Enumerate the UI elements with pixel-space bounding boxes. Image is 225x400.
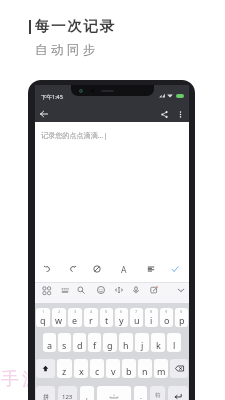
staticText: 自动同步	[33, 42, 97, 58]
staticText: 下午1:45	[41, 93, 63, 101]
button[interactable]: h	[119, 333, 133, 352]
button[interactable]: 0	[175, 308, 188, 327]
staticText: y	[119, 314, 124, 326]
button[interactable]: s	[58, 333, 71, 352]
button[interactable]: Collapse keyboard	[174, 283, 188, 297]
button[interactable]: 6	[115, 308, 128, 327]
staticText: 2	[58, 309, 61, 314]
button[interactable]: Symbols	[150, 386, 165, 400]
staticText: i	[150, 314, 153, 326]
button[interactable]: Emoji	[94, 283, 108, 297]
button[interactable]: b	[122, 359, 136, 378]
staticText: p	[179, 314, 185, 326]
staticText: 记录您的点点滴滴...|	[41, 130, 108, 140]
staticText: 9	[165, 309, 168, 314]
button[interactable]: Shift	[36, 359, 55, 378]
button[interactable]: n	[138, 359, 152, 378]
staticText: 0	[180, 309, 183, 314]
button[interactable]: l	[167, 333, 181, 352]
button[interactable]: Share	[157, 107, 171, 121]
button[interactable]: Done	[168, 262, 182, 276]
staticText: o	[164, 314, 170, 326]
staticText: k	[156, 339, 161, 351]
staticText: c	[95, 365, 100, 377]
button[interactable]: 123	[58, 386, 77, 400]
button[interactable]: j	[135, 333, 149, 352]
button[interactable]: Apps	[39, 283, 53, 297]
staticText: m	[157, 365, 166, 377]
staticText: q	[40, 314, 46, 326]
button[interactable]: a	[43, 333, 56, 352]
staticText: 拼	[43, 393, 49, 400]
staticText: 1	[42, 309, 45, 314]
button[interactable]: Backspace	[170, 359, 188, 378]
staticText: .	[140, 392, 142, 400]
staticText: 4	[90, 309, 93, 314]
button[interactable]: Enter	[168, 386, 188, 400]
staticText: d	[77, 339, 83, 351]
button[interactable]: Text style	[117, 262, 131, 276]
button[interactable]: k	[151, 333, 165, 352]
staticText: z	[62, 365, 67, 377]
staticText: 7	[135, 309, 138, 314]
staticText: v	[111, 365, 116, 377]
button[interactable]: 9	[160, 308, 173, 327]
button[interactable]: c	[90, 359, 104, 378]
button[interactable]: Keyboard layout	[58, 283, 72, 297]
button[interactable]: Voice input	[129, 283, 143, 297]
button[interactable]: Undo	[40, 262, 54, 276]
staticText: h	[123, 339, 129, 351]
button[interactable]: Clipboard	[147, 283, 161, 297]
staticText: 每一次记录	[34, 17, 115, 35]
button[interactable]: 5	[100, 308, 113, 327]
button[interactable]: 4	[84, 308, 98, 327]
staticText: l	[173, 339, 176, 351]
button[interactable]: x	[74, 359, 88, 378]
button[interactable]: Redo	[66, 262, 80, 276]
staticText: g	[107, 339, 113, 351]
button[interactable]: g	[103, 333, 117, 352]
button[interactable]: 7	[130, 308, 143, 327]
staticText: r	[89, 314, 93, 326]
button[interactable]: 8	[145, 308, 158, 327]
button[interactable]: .	[134, 386, 147, 400]
staticText: e	[72, 314, 78, 326]
button[interactable]: Translate	[112, 283, 126, 297]
button[interactable]: z	[57, 359, 72, 378]
button[interactable]: m	[154, 359, 168, 378]
staticText: n	[142, 365, 148, 377]
staticText: j	[141, 339, 144, 351]
button[interactable]: d	[73, 333, 86, 352]
button[interactable]: More options	[173, 107, 187, 121]
button[interactable]: 2	[52, 308, 66, 327]
button[interactable]: Search	[74, 283, 88, 297]
staticText: 5	[105, 309, 108, 314]
staticText: A	[121, 264, 127, 276]
button[interactable]: 拼	[36, 386, 55, 400]
button[interactable]: f	[88, 333, 101, 352]
staticText: b	[126, 365, 132, 377]
staticText: t	[105, 314, 109, 326]
button[interactable]: v	[106, 359, 120, 378]
button[interactable]: 3	[68, 308, 82, 327]
staticText: 6	[120, 309, 123, 314]
button[interactable]: Alignment	[144, 262, 158, 276]
button[interactable]: ,	[80, 386, 94, 400]
button[interactable]: 1	[36, 308, 50, 327]
staticText: ,	[86, 392, 88, 400]
staticText: s	[62, 339, 67, 351]
staticText: 符	[155, 392, 161, 399]
staticText: w	[55, 314, 63, 326]
staticText: f	[93, 339, 97, 351]
staticText: 123	[62, 393, 73, 400]
button[interactable]: Clear formatting	[90, 262, 104, 276]
staticText: a	[47, 339, 53, 351]
button[interactable]: Space	[97, 386, 131, 400]
staticText: 3	[74, 309, 77, 314]
staticText: u	[134, 314, 140, 326]
staticText: 手游网站.COM	[1, 366, 148, 391]
button[interactable]: Back	[37, 107, 51, 121]
staticText: 8	[150, 309, 153, 314]
staticText: x	[79, 365, 84, 377]
